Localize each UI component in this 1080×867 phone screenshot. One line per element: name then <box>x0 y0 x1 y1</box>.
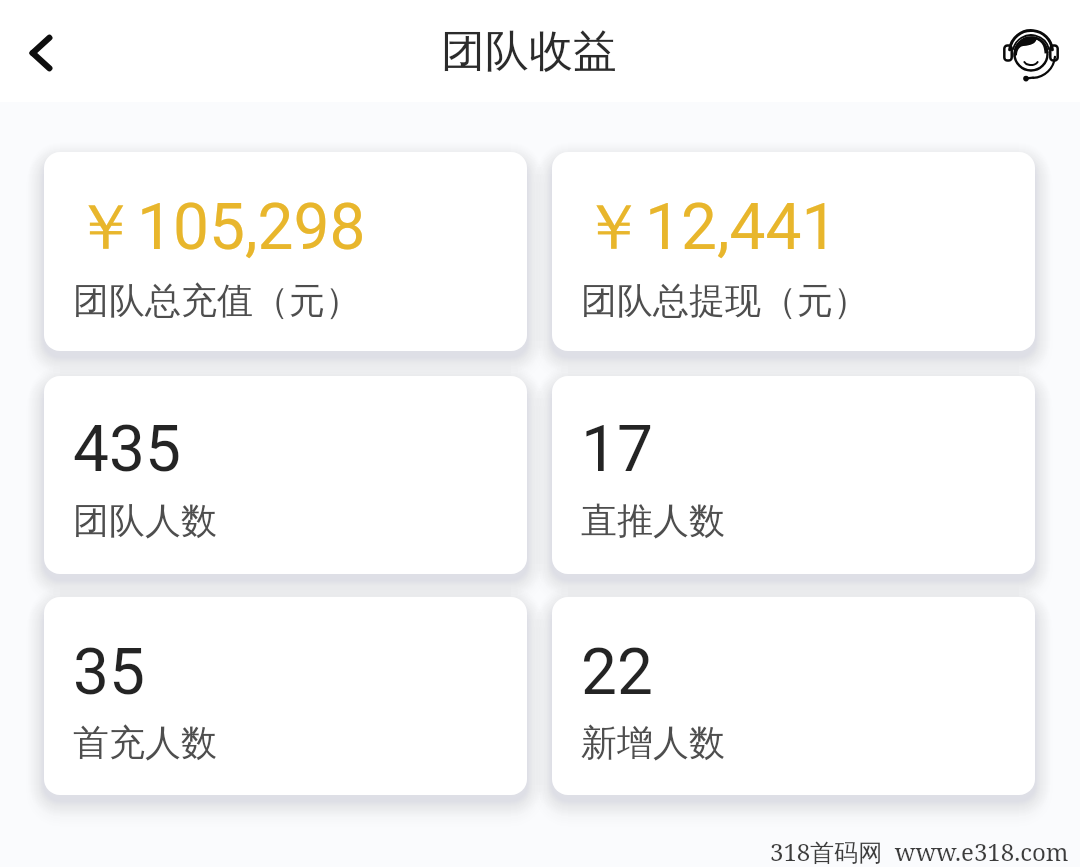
staticText: ￥105,298 <box>73 187 366 268</box>
button[interactable]: 17 <box>552 376 1035 574</box>
button[interactable]: 35 <box>44 597 527 795</box>
staticText: 直推人数 <box>581 498 725 543</box>
staticText: 22 <box>581 635 653 710</box>
staticText: 435 <box>73 412 181 487</box>
staticText: ￥12,441 <box>581 187 838 268</box>
staticText: 团队收益 <box>441 24 617 79</box>
button[interactable]: Customer service <box>984 0 1080 102</box>
staticText: 团队总充值（元） <box>73 278 361 323</box>
staticText: 318首码网 www.e318.com <box>770 835 1069 867</box>
button[interactable]: Back <box>0 2 82 104</box>
button[interactable]: ￥105,298 <box>44 152 527 351</box>
staticText: 首充人数 <box>73 720 217 765</box>
staticText: 团队总提现（元） <box>581 278 869 323</box>
staticText: 团队人数 <box>73 498 217 543</box>
staticText: 17 <box>581 412 653 487</box>
button[interactable]: ￥12,441 <box>552 152 1035 351</box>
staticText: 35 <box>73 635 145 710</box>
button[interactable]: 435 <box>44 376 527 574</box>
staticText: 新增人数 <box>581 720 725 765</box>
button[interactable]: 22 <box>552 597 1035 795</box>
